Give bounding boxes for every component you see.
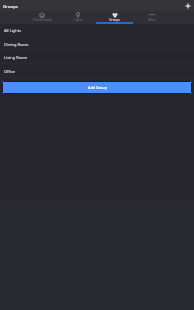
staticText: Living Room bbox=[4, 55, 28, 60]
staticText: All Lights bbox=[4, 28, 22, 33]
staticText: Groups bbox=[109, 18, 120, 22]
button[interactable]: Thunderbolts bbox=[24, 11, 60, 24]
button[interactable]: Living Room bbox=[0, 51, 194, 64]
staticText: Lights bbox=[74, 18, 83, 22]
button[interactable]: Office bbox=[0, 64, 194, 78]
button[interactable]: Dining Room bbox=[0, 37, 194, 51]
staticText: Groups bbox=[3, 3, 18, 9]
staticText: Office bbox=[4, 69, 16, 74]
button[interactable]: More bbox=[133, 11, 170, 24]
staticText: Thunderbolts bbox=[33, 18, 52, 22]
staticText: Dining Room bbox=[4, 42, 29, 47]
button[interactable]: Add group bbox=[183, 1, 192, 10]
staticText: Add Group bbox=[88, 85, 107, 90]
button[interactable]: Add Group bbox=[2, 81, 192, 94]
button[interactable]: Lights bbox=[60, 11, 96, 24]
button[interactable]: Groups bbox=[96, 11, 133, 24]
staticText: More bbox=[148, 18, 156, 22]
button[interactable]: All Lights bbox=[0, 24, 194, 37]
